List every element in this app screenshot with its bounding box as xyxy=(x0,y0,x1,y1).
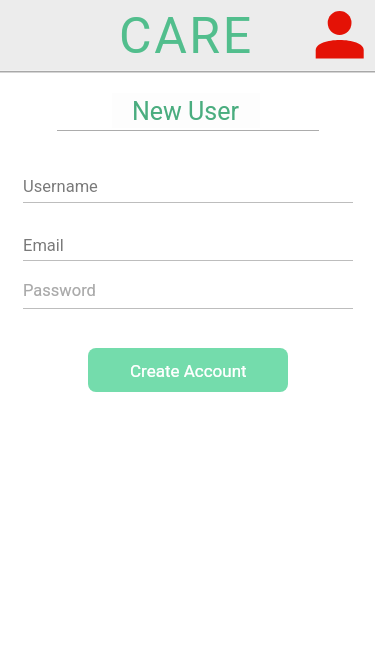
staticText: Create Account xyxy=(130,361,247,381)
button[interactable]: Create Account xyxy=(88,348,288,392)
button[interactable]: New User xyxy=(112,93,260,128)
staticText: New User xyxy=(132,97,239,126)
staticText: Email xyxy=(23,236,64,255)
staticText: Password xyxy=(23,281,96,300)
staticText: CARE xyxy=(119,7,254,66)
button[interactable]: Profile xyxy=(314,8,366,60)
staticText: Username xyxy=(23,177,98,196)
